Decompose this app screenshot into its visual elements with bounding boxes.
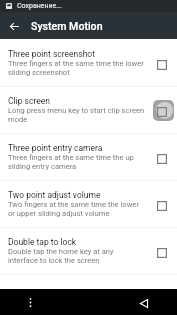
staticText: Three point screenshot [8,49,95,59]
staticText: Two point adjust volume [8,190,101,200]
button[interactable]: Clip screen [0,86,177,133]
staticText: Two fingers at the same time the lower o… [8,200,139,218]
staticText: Three fingers at the same time the lower… [8,59,144,77]
staticText: Three fingers at the same time the up sl… [8,153,134,171]
staticText: Double tap to lock [8,237,77,247]
staticText: Three point entry camera [8,143,103,153]
staticText: Clip screen [8,96,50,106]
button[interactable]: Menu [0,289,60,315]
button[interactable]: Three point screenshot [0,39,177,86]
button[interactable]: Three point entry camera [0,133,177,180]
staticText: Сохранение... [17,2,62,10]
button[interactable]: Double tap to lock [0,227,177,274]
button[interactable]: Back [1,13,27,39]
button[interactable]: Back [117,289,177,315]
staticText: Long press menu key to start clip screen… [8,106,145,124]
staticText: System Motion [31,20,103,32]
staticText: Double tap the home key at any interface… [8,247,114,265]
button[interactable]: Two point adjust volume [0,180,177,227]
